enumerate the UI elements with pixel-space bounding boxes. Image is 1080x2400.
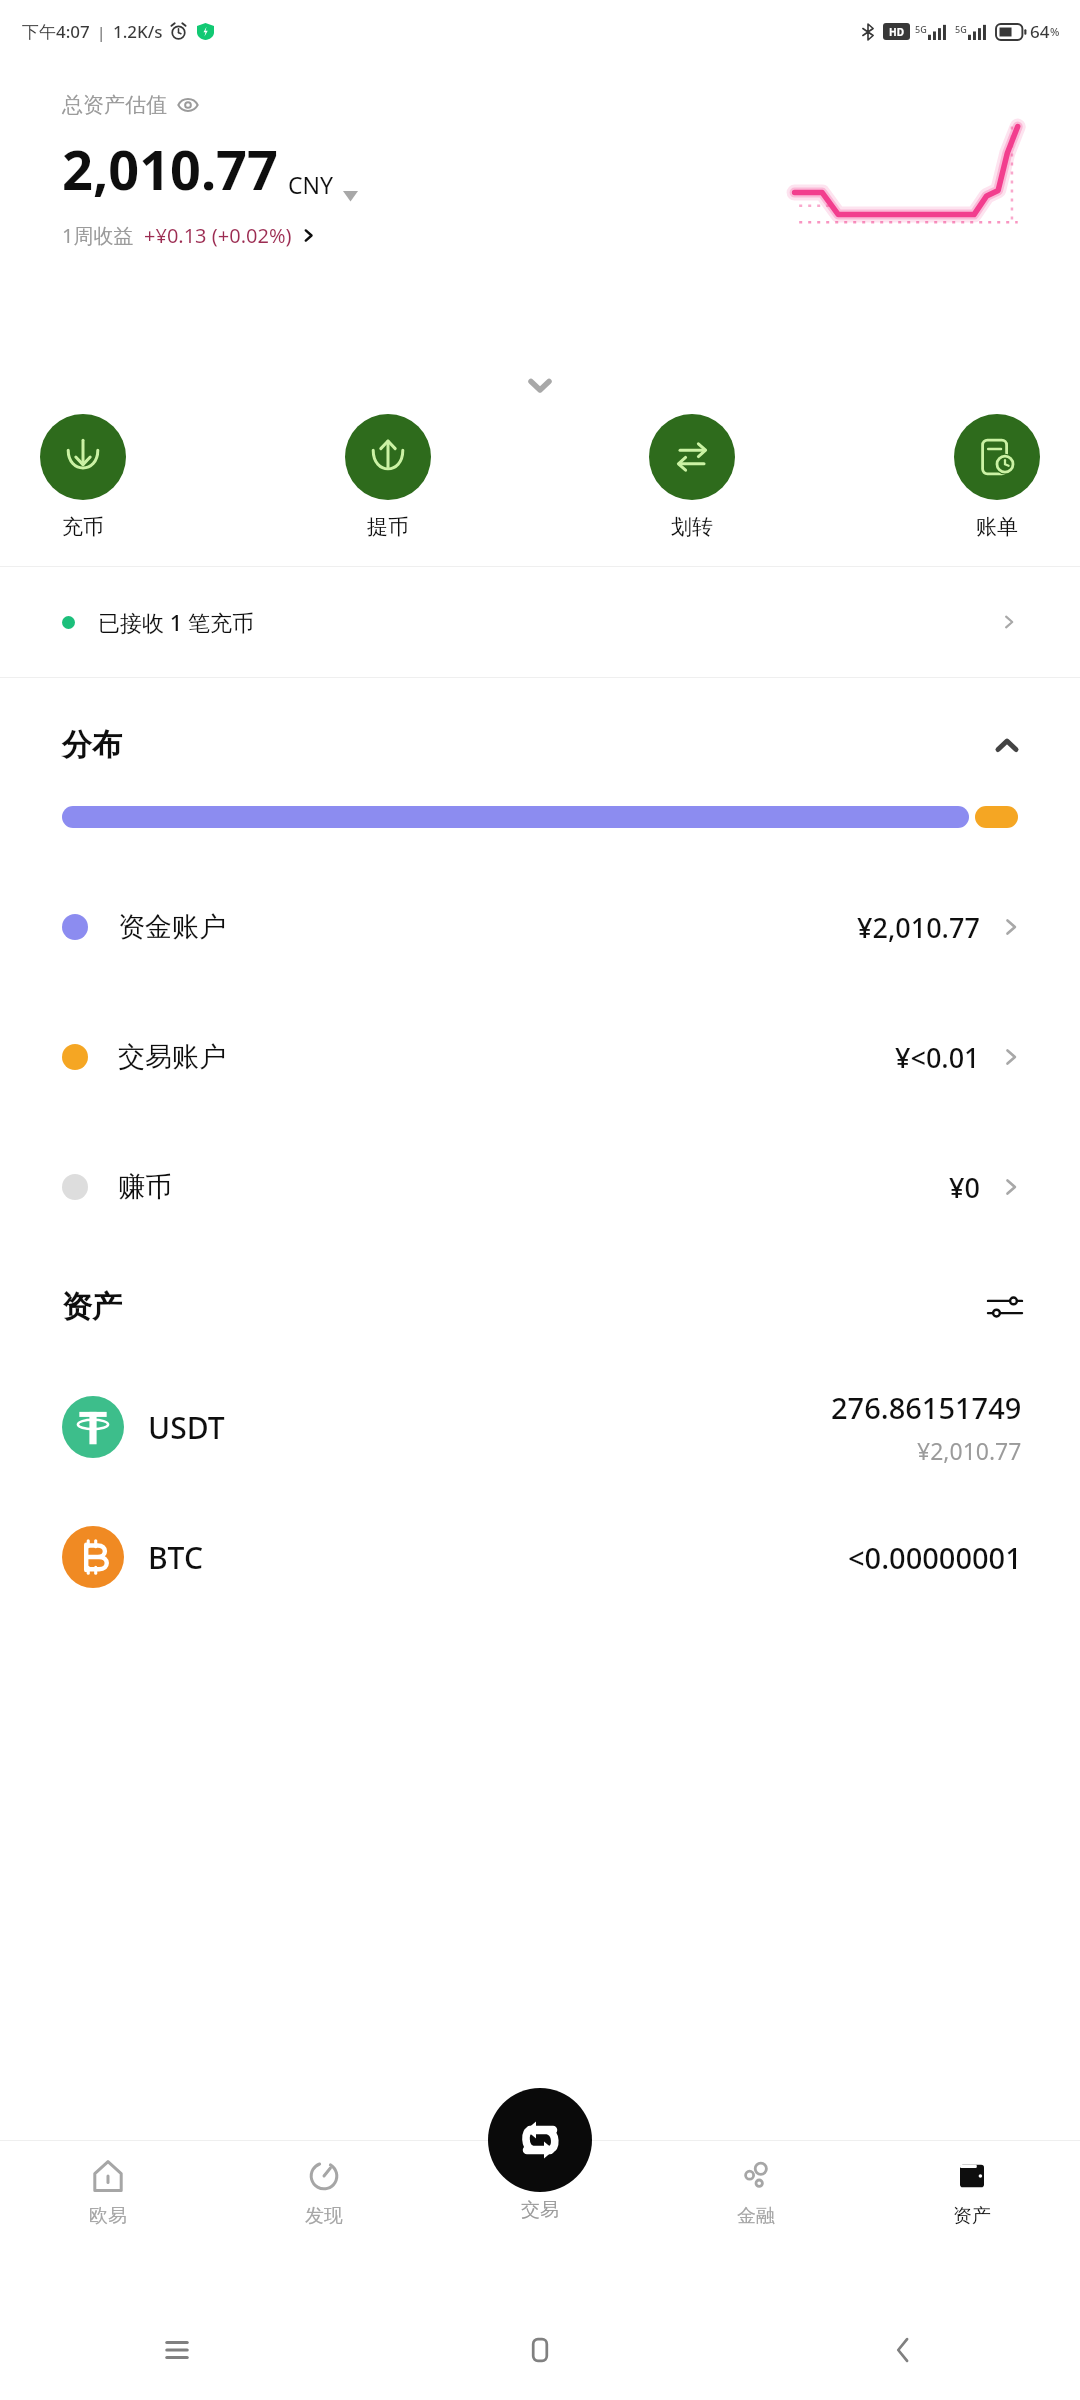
staticText: BTC (148, 1537, 203, 1578)
button[interactable]: 账单 (950, 410, 1044, 544)
button[interactable]: Recents (160, 2333, 194, 2367)
button[interactable]: 划转 (645, 410, 739, 544)
staticText: 5G (955, 23, 967, 35)
staticText: CNY (288, 169, 334, 200)
staticText: 64 (1030, 20, 1050, 43)
button[interactable]: 欧易 (0, 2152, 216, 2228)
staticText: 总资产估值 (62, 92, 167, 118)
staticText: ¥2,010.77 (857, 909, 980, 946)
staticText: 金融 (737, 2204, 775, 2228)
staticText: 账单 (976, 514, 1018, 540)
staticText: +¥0.13 (+0.02%) (144, 222, 292, 249)
other: Collapse section (992, 736, 1022, 754)
staticText: 5G (915, 23, 927, 35)
other: Collapse (525, 377, 555, 395)
button[interactable]: 赚币 (0, 1122, 1080, 1252)
button[interactable]: 已接收 1 笔充币 (0, 567, 1080, 677)
staticText: | (97, 22, 106, 42)
staticText: 276.86151749 (831, 1388, 1022, 1427)
staticText: 已接收 1 笔充币 (98, 607, 255, 637)
staticText: <0.00000001 (848, 1538, 1022, 1577)
button[interactable]: 交易 (521, 2152, 559, 2222)
button[interactable]: 资产 (62, 1288, 1022, 1326)
staticText: HD (889, 25, 904, 39)
staticText: 充币 (62, 514, 104, 540)
button[interactable]: 金融 (648, 2152, 864, 2228)
staticText: 欧易 (89, 2204, 127, 2228)
button[interactable]: 1周收益 (62, 222, 317, 249)
staticText: 交易 (521, 2198, 559, 2222)
button[interactable]: Back (886, 2333, 920, 2367)
button[interactable]: Trade (488, 2088, 592, 2192)
button[interactable]: 分布 (62, 726, 1022, 764)
button[interactable]: 资金账户 (0, 862, 1080, 992)
button[interactable]: 发现 (216, 2152, 432, 2228)
button[interactable]: 总资产估值 (62, 92, 199, 118)
staticText: 发现 (305, 2204, 343, 2228)
button[interactable]: 资产 (864, 2152, 1080, 2228)
staticText: 提币 (367, 514, 409, 540)
staticText: 资金账户 (118, 910, 226, 944)
button[interactable]: Home (523, 2333, 557, 2367)
button[interactable]: 交易账户 (0, 992, 1080, 1122)
staticText: 下午4:07 (22, 20, 90, 43)
staticText: 分布 (62, 726, 122, 764)
staticText: % (1050, 24, 1060, 39)
button[interactable]: 2,010.77 (62, 132, 358, 206)
staticText: USDT (148, 1407, 225, 1448)
staticText: 1周收益 (62, 222, 134, 249)
button[interactable]: 提币 (341, 410, 435, 544)
staticText: ¥2,010.77 (917, 1435, 1022, 1466)
button[interactable]: 充币 (36, 410, 130, 544)
staticText: 资产 (62, 1288, 122, 1326)
staticText: 资产 (953, 2204, 991, 2228)
other: Toggle visibility (177, 94, 199, 116)
staticText: ¥0 (949, 1169, 980, 1206)
staticText: 交易账户 (118, 1040, 226, 1074)
button[interactable]: Collapse (0, 362, 1080, 410)
staticText: 1.2K/s (113, 20, 163, 43)
staticText: ¥<0.01 (895, 1039, 980, 1076)
staticText: 赚币 (118, 1170, 172, 1204)
button[interactable]: USDT (0, 1362, 1080, 1492)
staticText: 划转 (671, 514, 713, 540)
button[interactable]: BTC (0, 1492, 1080, 1622)
staticText: 2,010.77 (62, 132, 278, 206)
other: Filter (988, 1290, 1022, 1324)
